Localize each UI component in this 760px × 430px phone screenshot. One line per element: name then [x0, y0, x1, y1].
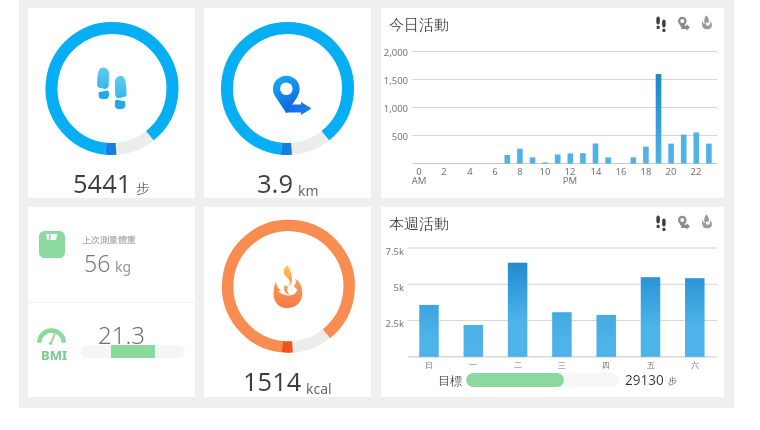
staticText: 5441 [73, 166, 132, 201]
staticText: 1514 [243, 364, 302, 399]
staticText: 56 [84, 247, 111, 278]
button[interactable]: 3.9 [204, 8, 371, 198]
staticText: 1,000 [381, 102, 408, 115]
staticText: 5k [381, 281, 404, 294]
button[interactable]: Calories [696, 210, 720, 234]
staticText: kcal [306, 379, 332, 398]
staticText: km [298, 181, 319, 200]
button[interactable]: 今日活動 [381, 8, 724, 198]
staticText: PM [555, 174, 585, 187]
staticText: 20 [656, 165, 686, 178]
staticText: 二 [503, 360, 533, 370]
button[interactable]: Distance [672, 210, 696, 234]
staticText: 六 [680, 360, 710, 370]
button[interactable]: Steps [649, 11, 673, 35]
staticText: 上次測量體重 [82, 234, 136, 245]
staticText: 7.5k [381, 245, 404, 258]
staticText: 6 [480, 165, 510, 178]
button[interactable]: 上次測量體重 [28, 207, 195, 397]
button[interactable]: 上次測量體重 [28, 207, 195, 302]
staticText: 22 [681, 165, 711, 178]
staticText: 10 [530, 165, 560, 178]
button[interactable]: 本週活動 [381, 207, 724, 397]
staticText: 29130 [625, 371, 664, 389]
staticText: 三 [547, 360, 577, 370]
staticText: 3.9 [257, 166, 294, 201]
button[interactable]: 5441 [28, 8, 195, 198]
button[interactable]: Calories [696, 11, 720, 35]
staticText: 2 [429, 165, 459, 178]
staticText: 4 [455, 165, 485, 178]
staticText: 今日活動 [389, 16, 449, 35]
staticText: 步 [668, 375, 677, 386]
staticText: 步 [136, 180, 150, 197]
staticText: 1,500 [381, 74, 408, 87]
button[interactable]: BMI [28, 303, 195, 397]
staticText: 8 [505, 165, 535, 178]
staticText: 18 [631, 165, 661, 178]
staticText: 一 [458, 360, 488, 370]
staticText: 500 [381, 130, 408, 143]
staticText: 2.5k [381, 317, 404, 330]
staticText: 目標 [438, 373, 462, 388]
staticText: 五 [636, 360, 666, 370]
staticText: 0 [404, 165, 434, 178]
staticText: 16 [606, 165, 636, 178]
button[interactable]: 1514 [204, 207, 371, 397]
staticText: 14 [581, 165, 611, 178]
staticText: kg [115, 257, 132, 276]
button[interactable]: Steps [649, 210, 673, 234]
staticText: 四 [591, 360, 621, 370]
staticText: 2,000 [381, 46, 408, 59]
staticText: 12 [555, 165, 585, 178]
button[interactable]: Distance [672, 11, 696, 35]
staticText: 本週活動 [389, 215, 449, 234]
staticText: BMI [41, 346, 67, 364]
staticText: AM [404, 174, 434, 187]
staticText: 21.3 [69, 318, 174, 351]
staticText: 日 [414, 360, 444, 370]
